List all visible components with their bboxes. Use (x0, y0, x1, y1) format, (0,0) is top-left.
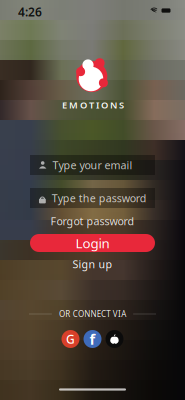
staticText: G (66, 331, 75, 347)
staticText: Sign up (72, 257, 112, 271)
button[interactable]: Forgot password (30, 215, 155, 227)
button[interactable]: Sign in with Google (61, 330, 79, 348)
button[interactable]: Sign in with Facebook (83, 330, 101, 348)
button[interactable]: Type the password (30, 188, 155, 208)
button[interactable]: Sign up (30, 258, 155, 270)
staticText: OR CONNECT VIA (59, 309, 126, 319)
staticText: Forgot password (50, 214, 134, 228)
staticText: E M O T I O N S (62, 99, 124, 111)
button[interactable]: Type your email (30, 155, 155, 175)
button[interactable]: Login (30, 234, 155, 252)
staticText: Type the password (52, 191, 147, 205)
staticText: 4:26 (18, 4, 42, 20)
button[interactable]: Sign in with Apple (105, 330, 123, 348)
staticText: Login (75, 234, 109, 252)
staticText: Type your email (52, 158, 132, 172)
staticText: f (89, 329, 95, 349)
